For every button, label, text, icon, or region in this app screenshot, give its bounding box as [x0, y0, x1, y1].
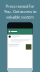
staticText: Prescreened For	[5, 4, 34, 9]
staticText: You - Get access to	[4, 9, 36, 14]
staticText: valuable system	[6, 14, 34, 19]
